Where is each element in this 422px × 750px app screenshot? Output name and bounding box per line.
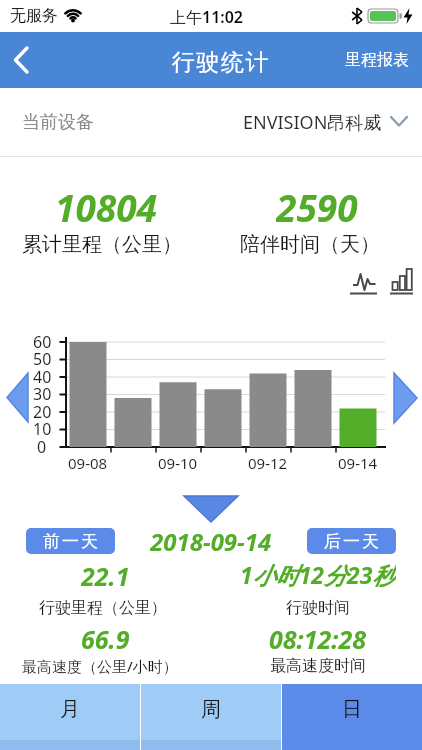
staticText: 2590 bbox=[276, 182, 358, 226]
button[interactable]: 前一天 bbox=[26, 528, 115, 554]
staticText: 里程报表 bbox=[345, 50, 409, 70]
button[interactable]: 后一天 bbox=[307, 528, 396, 554]
staticText: 50 bbox=[33, 348, 52, 370]
staticText: 09-10 bbox=[158, 453, 198, 473]
staticText: 40 bbox=[33, 366, 52, 388]
staticText: 前一天 bbox=[42, 531, 99, 552]
staticText: 10804 bbox=[55, 182, 157, 226]
staticText: 20 bbox=[33, 401, 52, 423]
button[interactable] bbox=[2, 370, 32, 426]
staticText: 累计里程（公里） bbox=[22, 232, 182, 257]
staticText: 当前设备 bbox=[22, 111, 94, 134]
staticText: 09-12 bbox=[248, 453, 288, 473]
staticText: ENVISION昂科威 bbox=[243, 110, 382, 135]
button[interactable] bbox=[346, 266, 380, 298]
staticText: 日 bbox=[342, 697, 362, 722]
staticText: 09-14 bbox=[338, 453, 378, 473]
staticText: 上午11:02 bbox=[170, 6, 244, 26]
button[interactable]: 里程报表 bbox=[337, 34, 417, 86]
staticText: 后一天 bbox=[323, 531, 380, 552]
staticText: 行驶时间 bbox=[286, 598, 350, 618]
button[interactable] bbox=[0, 684, 140, 750]
staticText: 最高速度（公里/小时） bbox=[22, 656, 178, 676]
staticText: 66.9 bbox=[81, 622, 130, 650]
staticText: 周 bbox=[201, 697, 221, 722]
staticText: 陪伴时间（天） bbox=[240, 232, 380, 257]
staticText: 无服务 bbox=[10, 6, 58, 26]
button[interactable] bbox=[0, 88, 422, 157]
staticText: 1小时12分23秒 bbox=[240, 559, 396, 587]
staticText: 09-08 bbox=[68, 453, 108, 473]
staticText: 月 bbox=[60, 697, 80, 722]
staticText: 60 bbox=[33, 331, 52, 353]
button[interactable] bbox=[282, 684, 422, 750]
staticText: 0 bbox=[37, 436, 47, 458]
staticText: 22.1 bbox=[81, 559, 130, 587]
staticText: 2018-09-14 bbox=[150, 525, 272, 555]
button[interactable] bbox=[0, 32, 44, 88]
button[interactable] bbox=[386, 264, 416, 298]
staticText: 行驶统计 bbox=[171, 48, 269, 77]
staticText: 行驶里程（公里） bbox=[39, 598, 167, 618]
staticText: 08:12:28 bbox=[269, 622, 367, 650]
staticText: 30 bbox=[33, 383, 52, 405]
button[interactable] bbox=[390, 370, 420, 426]
button[interactable] bbox=[141, 684, 281, 750]
staticText: 10 bbox=[33, 418, 52, 440]
staticText: 最高速度时间 bbox=[270, 656, 366, 676]
